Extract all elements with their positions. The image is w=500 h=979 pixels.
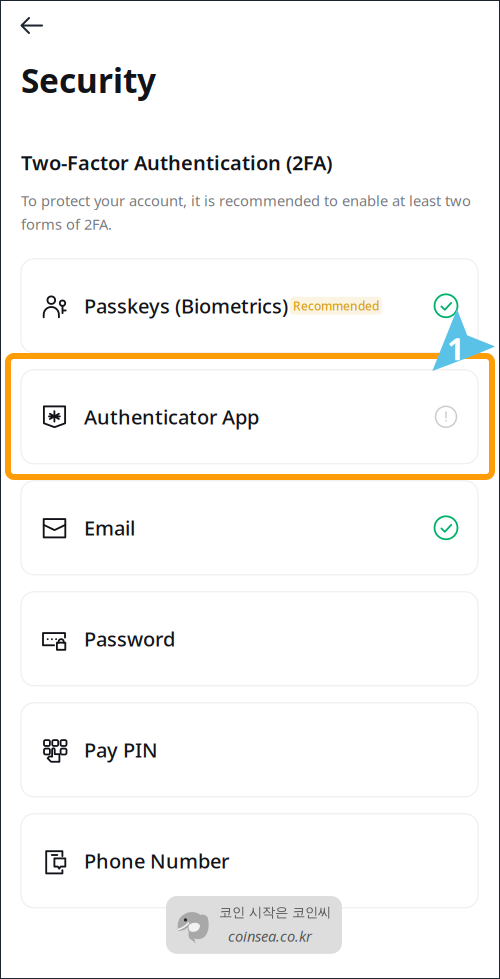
staticText: Password — [84, 625, 175, 652]
staticText: Email — [84, 514, 135, 541]
staticText: coinsea.co.kr — [228, 926, 312, 946]
button[interactable]: Passkeys (Biometrics) — [21, 259, 478, 353]
staticText: Authenticator App — [84, 403, 259, 430]
staticText: 코인 시작은 코인씨 — [219, 904, 331, 920]
button[interactable]: Back — [11, 12, 53, 40]
staticText: Passkeys (Biometrics) — [84, 292, 288, 319]
button[interactable]: Phone Number — [21, 814, 478, 908]
staticText: 1 — [447, 328, 465, 369]
button[interactable]: Pay PIN — [21, 703, 478, 797]
staticText: Phone Number — [84, 847, 229, 874]
staticText: To protect your account, it is recommend… — [21, 191, 471, 234]
button[interactable]: Email — [21, 481, 478, 575]
button[interactable]: Password — [21, 592, 478, 686]
button[interactable]: Authenticator App — [21, 370, 478, 464]
staticText: Recommended — [293, 298, 379, 314]
staticText: Pay PIN — [84, 736, 158, 763]
staticText: Security — [21, 58, 156, 102]
staticText: Two-Factor Authentication (2FA) — [21, 149, 332, 176]
